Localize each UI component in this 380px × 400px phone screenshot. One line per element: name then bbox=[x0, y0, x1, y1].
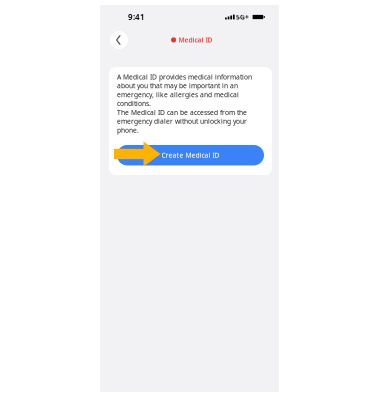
staticText: A Medical ID provides medical informatio… bbox=[117, 72, 252, 108]
staticText: 9:41 bbox=[128, 12, 145, 22]
button[interactable]: Create Medical ID bbox=[117, 145, 264, 165]
staticText: 5G+ bbox=[236, 13, 249, 21]
staticText: Create Medical ID bbox=[161, 151, 219, 160]
staticText: The Medical ID can be accessed from the … bbox=[117, 108, 247, 134]
button[interactable]: Back bbox=[110, 31, 128, 49]
staticText: Medical ID bbox=[178, 35, 212, 44]
